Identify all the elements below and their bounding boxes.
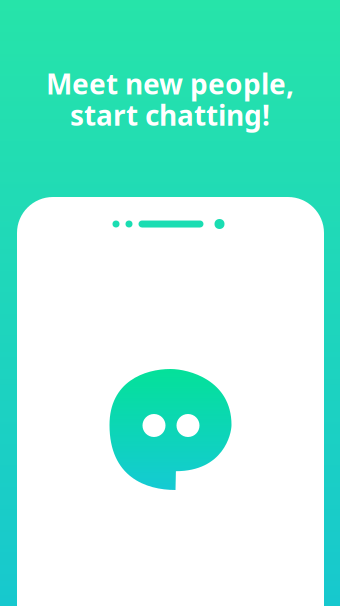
staticText: start chatting! [70, 96, 270, 133]
staticText: Meet new people, [46, 65, 294, 102]
